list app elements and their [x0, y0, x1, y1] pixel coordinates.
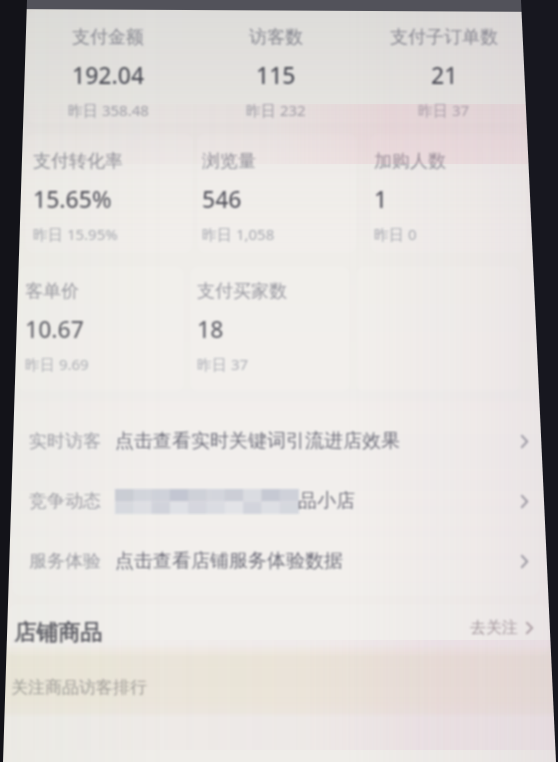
staticText: 浏览量	[202, 150, 256, 173]
staticText: 昨日 0	[374, 224, 417, 244]
staticText: 昨日 37	[418, 100, 470, 120]
staticText: 支付买家数	[197, 280, 287, 303]
staticText: 品小店	[298, 489, 355, 513]
button[interactable]: 店铺商品	[0, 612, 558, 654]
staticText: 昨日 37	[197, 354, 249, 374]
staticText: 21	[431, 59, 458, 90]
staticText: 点击查看店铺服务体验数据	[115, 549, 343, 573]
staticText: 昨日 9.69	[25, 354, 89, 374]
button[interactable]: 去关注	[470, 612, 533, 644]
staticText: 支付子订单数	[390, 26, 498, 49]
staticText: 115	[256, 59, 296, 90]
staticText: 192.04	[72, 59, 145, 90]
staticText: 店铺商品	[14, 619, 102, 647]
button[interactable]: 竞争动态	[0, 471, 558, 531]
staticText: 昨日 358.48	[68, 100, 149, 120]
staticText: 546	[202, 183, 242, 214]
staticText: 访客数	[249, 26, 303, 49]
staticText: 昨日 15.95%	[33, 224, 118, 244]
staticText: 竞争动态	[29, 490, 101, 513]
staticText: 去关注	[470, 618, 518, 638]
button[interactable]: 实时访客	[0, 411, 558, 471]
staticText: 支付转化率	[33, 150, 123, 173]
staticText: 18	[197, 313, 224, 344]
staticText: 点击查看实时关键词引流进店效果	[115, 429, 400, 453]
staticText: 昨日 1,058	[202, 224, 275, 244]
staticText: 服务体验	[29, 550, 101, 573]
staticText: 关注商品访客排行	[11, 677, 147, 698]
staticText: 客单价	[25, 280, 79, 303]
staticText: 1	[374, 183, 388, 214]
staticText: 昨日 232	[246, 100, 306, 120]
staticText: 加购人数	[374, 150, 446, 173]
button[interactable]: 服务体验	[0, 531, 558, 591]
staticText: 15.65%	[33, 183, 112, 214]
staticText: 支付金额	[72, 26, 144, 49]
staticText: 实时访客	[29, 430, 101, 453]
staticText: 10.67	[25, 313, 84, 344]
